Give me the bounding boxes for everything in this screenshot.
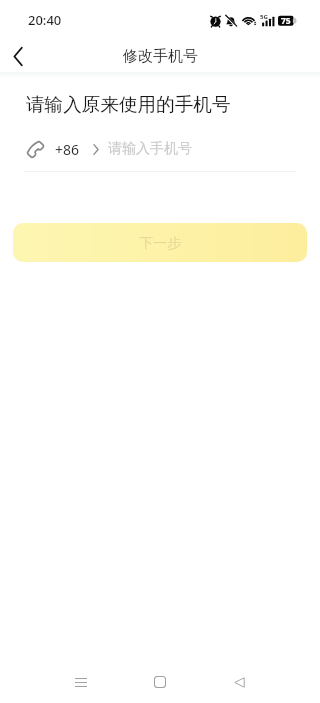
staticText: 下一步 [139,234,182,252]
button[interactable]: Back [0,40,36,72]
button[interactable]: Home [140,661,180,703]
button[interactable]: Back [219,661,259,703]
button[interactable]: Recent apps [61,661,101,703]
staticText: +86 [55,140,80,159]
staticText: 20:40 [28,11,62,29]
staticText: 75 [281,15,291,27]
staticText: 修改手机号 [123,47,198,66]
staticText: 请输入原来使用的手机号 [26,93,231,116]
button[interactable]: 下一步 [13,223,307,262]
staticText: 请输入手机号 [108,140,192,158]
button[interactable]: +86 [27,137,296,161]
staticText: 5G [260,13,268,21]
